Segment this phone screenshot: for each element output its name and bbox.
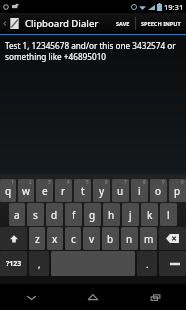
staticText: c [71,232,76,246]
button[interactable]: a [9,203,25,226]
staticText: 8 [143,179,146,185]
staticText: 4 [67,179,70,185]
staticText: s [33,208,38,222]
staticText: m [144,232,154,246]
button[interactable]: c [65,227,81,250]
button[interactable]: Shift [0,227,27,250]
staticText: i [138,184,141,198]
staticText: 0 [181,179,184,185]
staticText: SPEECH INPUT [141,20,181,28]
staticText: 9 [162,179,165,185]
staticText: , [38,258,41,270]
staticText: 6 [105,179,108,185]
staticText: 7 [124,179,127,185]
staticText: 5 [86,179,89,185]
button[interactable]: 3 [36,179,53,202]
staticText: b [107,232,114,246]
staticText: a [14,208,20,222]
staticText: Test 1, 12345678 and/or this one 3432574… [5,40,179,62]
staticText: r [61,184,66,198]
button[interactable]: 0 [169,179,186,202]
button[interactable]: Enter [159,251,186,276]
staticText: ?123 [6,259,22,269]
button[interactable]: b [102,227,119,250]
staticText: u [117,184,124,198]
staticText: 1 [11,179,14,185]
button[interactable]: 7 [112,179,129,202]
button[interactable]: , [29,251,49,276]
button[interactable]: Recents [124,284,186,310]
staticText: k [147,208,153,222]
button[interactable]: Up [0,13,22,34]
staticText: q [5,184,12,198]
button[interactable]: l [160,203,177,226]
staticText: . [146,258,149,270]
staticText: SAVE [116,20,130,28]
staticText: z [35,232,40,246]
button[interactable]: f [65,203,82,226]
button[interactable]: 5 [74,179,91,202]
button[interactable]: SPEECH INPUT [136,13,186,34]
button[interactable]: s [27,203,44,226]
staticText: l [167,208,170,222]
staticText: 19:31 [164,2,184,12]
staticText: f [72,208,76,222]
staticText: w [22,184,30,198]
button[interactable]: g [84,203,101,226]
button[interactable]: m [140,227,157,250]
button[interactable]: Home [62,284,124,310]
button[interactable]: z [29,227,45,250]
button[interactable]: v [83,227,100,250]
staticText: d [51,208,58,222]
staticText: p [174,184,181,198]
staticText: 3 [48,179,51,185]
button[interactable]: Hide keyboard [0,284,62,310]
staticText: h [108,208,115,222]
staticText: o [155,184,162,198]
button[interactable]: 9 [150,179,167,202]
staticText: x [52,232,58,246]
button[interactable]: h [103,203,120,226]
button[interactable]: 1 [0,179,16,202]
button[interactable]: j [122,203,139,226]
button[interactable]: 8 [131,179,148,202]
staticText: e [42,184,48,198]
button[interactable]: 2 [18,179,34,202]
button[interactable]: k [141,203,158,226]
button[interactable]: SAVE [111,13,135,34]
staticText: g [89,208,96,222]
button[interactable]: Delete [159,227,186,250]
staticText: n [126,232,133,246]
staticText: y [99,184,105,198]
staticText: t [81,184,85,198]
button[interactable]: Symbols [0,251,27,276]
staticText: 2 [29,179,32,185]
button[interactable]: 6 [93,179,110,202]
staticText: v [89,232,95,246]
staticText: j [129,208,132,222]
button[interactable]: d [46,203,63,226]
button[interactable]: . [137,251,157,276]
button[interactable]: n [121,227,138,250]
staticText: Clipboard Dialer [25,17,99,30]
button[interactable]: 4 [55,179,72,202]
button[interactable]: x [47,227,63,250]
